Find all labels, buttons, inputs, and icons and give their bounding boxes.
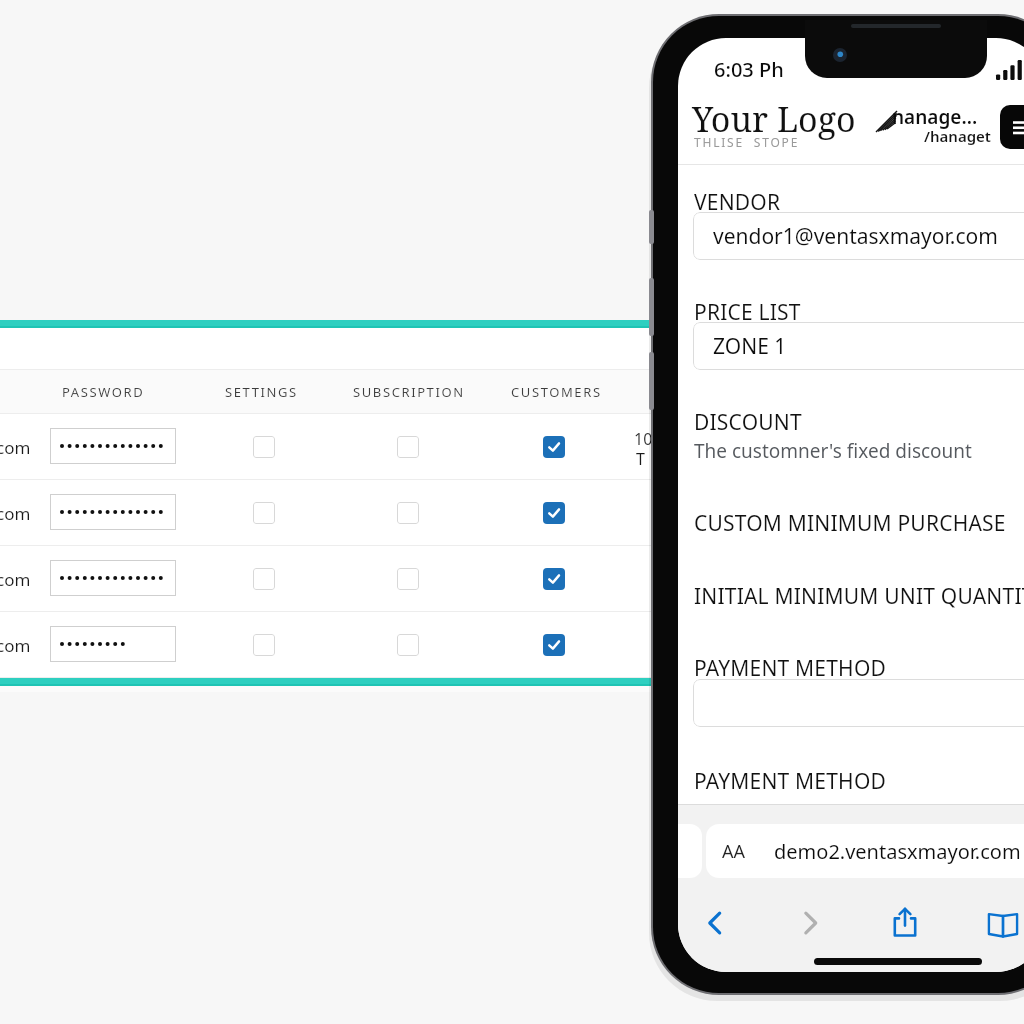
staticText: VENDOR — [694, 188, 781, 217]
button[interactable]: SETTINGS — [211, 370, 311, 414]
button[interactable]: Checkbox unchecked — [397, 634, 419, 656]
staticText: ZONE 1 — [713, 332, 787, 361]
staticText: AA — [722, 839, 746, 864]
button[interactable]: Share — [876, 893, 934, 951]
staticText: /hanaget — [924, 126, 991, 146]
button[interactable]: Bookmarks — [974, 896, 1024, 954]
button[interactable]: nanage... — [874, 100, 1004, 150]
button[interactable]: Checkbox unchecked — [253, 436, 275, 458]
staticText: Your Logo — [692, 96, 856, 142]
staticText: The customner's fixed discount — [694, 438, 972, 464]
button[interactable]: Checkbox checked — [543, 568, 565, 590]
staticText: nanage... — [892, 104, 978, 130]
staticText: PAYMENT METHOD — [694, 654, 887, 683]
staticText: INITIAL MINIMUM UNIT QUANTITY — [694, 582, 1024, 611]
button[interactable] — [0, 546, 660, 612]
button[interactable]: Checkbox unchecked — [397, 568, 419, 590]
button[interactable]: CUSTOMERS — [497, 370, 615, 414]
button[interactable]: Checkbox unchecked — [397, 436, 419, 458]
button[interactable]: Volume down — [649, 352, 654, 410]
button[interactable]: Checkbox unchecked — [253, 634, 275, 656]
button[interactable]: Volume up — [649, 278, 654, 336]
button[interactable]: Checkbox unchecked — [253, 502, 275, 524]
button[interactable]: Forward — [783, 896, 837, 950]
button[interactable]: Checkbox unchecked — [397, 502, 419, 524]
staticText: vendor1@ventasxmayor.com — [713, 222, 998, 251]
button[interactable]: Checkbox checked — [543, 502, 565, 524]
button[interactable]: Menu — [1000, 105, 1024, 149]
button[interactable]: AA — [706, 824, 1024, 878]
button[interactable] — [693, 679, 1024, 727]
staticText: PASSWORD — [62, 383, 145, 401]
button[interactable] — [50, 494, 176, 530]
staticText: PRICE LIST — [694, 298, 801, 327]
button[interactable] — [0, 480, 660, 546]
button[interactable]: Checkbox unchecked — [253, 568, 275, 590]
staticText: CUSTOMERS — [511, 383, 602, 401]
button[interactable]: Back — [688, 896, 742, 950]
button[interactable]: Checkbox checked — [543, 634, 565, 656]
staticText: SUBSCRIPTION — [353, 383, 465, 401]
staticText: CUSTOM MINIMUM PURCHASE — [694, 509, 1006, 538]
staticText: 6:03 Ph — [714, 56, 784, 83]
staticText: DISCOUNT — [694, 408, 802, 437]
staticText: com — [0, 634, 31, 657]
staticText: com — [0, 568, 31, 591]
staticText: T — [636, 448, 645, 470]
button[interactable] — [50, 626, 176, 662]
button[interactable]: vendor1@ventasxmayor.com — [693, 212, 1024, 260]
button[interactable]: PASSWORD — [47, 370, 159, 414]
button[interactable] — [50, 428, 176, 464]
button[interactable]: ZONE 1 — [693, 322, 1024, 370]
staticText: PAYMENT METHOD — [694, 767, 887, 796]
button[interactable] — [50, 560, 176, 596]
staticText: demo2.ventasxmayor.com — [774, 838, 1021, 865]
staticText: THLISE STOPE — [694, 134, 800, 150]
staticText: com — [0, 436, 31, 459]
button[interactable]: Checkbox checked — [543, 436, 565, 458]
staticText: SETTINGS — [225, 383, 298, 401]
button[interactable] — [0, 414, 660, 480]
button[interactable] — [0, 612, 660, 678]
button[interactable]: SUBSCRIPTION — [341, 370, 477, 414]
staticText: com — [0, 502, 31, 525]
staticText: 10 — [634, 428, 653, 450]
button[interactable]: Silence switch — [649, 210, 654, 244]
